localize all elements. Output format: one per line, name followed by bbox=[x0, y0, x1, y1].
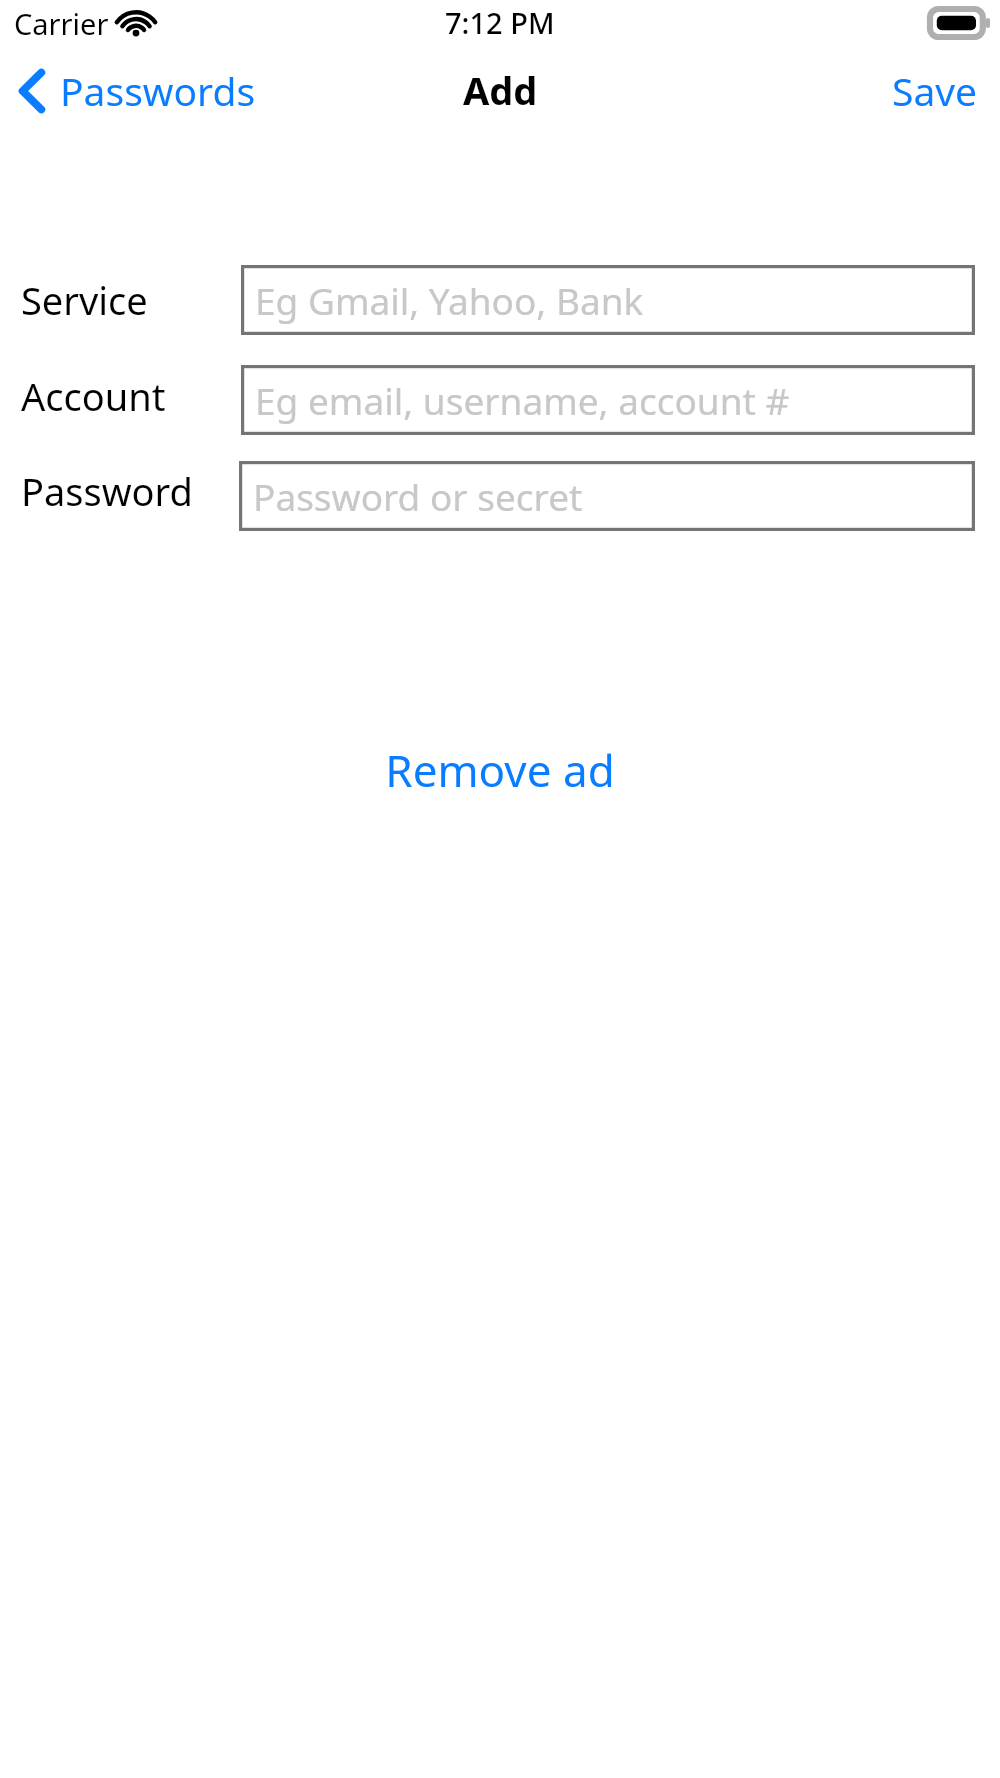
staticText: Eg Gmail, Yahoo, Bank bbox=[255, 275, 644, 325]
staticText: Remove ad bbox=[385, 740, 615, 800]
staticText: Eg email, username, account # bbox=[255, 375, 790, 425]
staticText: Account bbox=[21, 370, 166, 422]
staticText: Password or secret bbox=[253, 471, 583, 521]
button[interactable]: Eg Gmail, Yahoo, Bank bbox=[241, 265, 975, 335]
button[interactable]: Password or secret bbox=[239, 461, 975, 531]
staticText: Save bbox=[892, 64, 978, 117]
button[interactable]: Passwords bbox=[0, 58, 272, 123]
staticText: Add bbox=[463, 64, 538, 116]
staticText: 7:12 PM bbox=[445, 3, 555, 42]
staticText: Service bbox=[21, 274, 148, 326]
staticText: Passwords bbox=[60, 64, 256, 117]
button[interactable]: Remove ad bbox=[359, 730, 641, 810]
button[interactable]: Save bbox=[874, 58, 1000, 123]
staticText: Password bbox=[21, 465, 193, 517]
button[interactable]: Eg email, username, account # bbox=[241, 365, 975, 435]
staticText: Carrier bbox=[14, 4, 109, 43]
